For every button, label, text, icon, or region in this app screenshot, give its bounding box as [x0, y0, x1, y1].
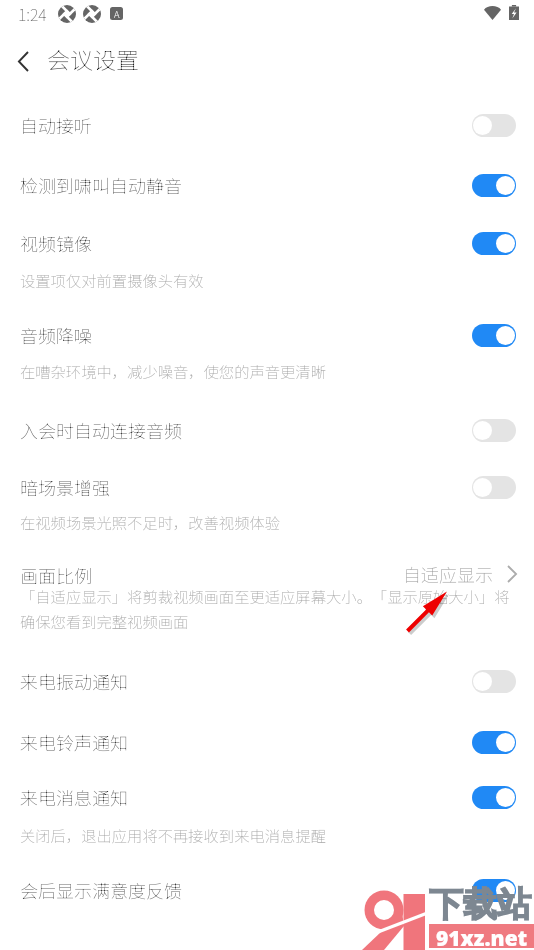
button[interactable]: [0, 548, 534, 652]
staticText: 在视频场景光照不足时，改善视频体验: [20, 511, 281, 533]
staticText: 会议设置: [47, 42, 139, 75]
staticText: 画面比例: [20, 562, 92, 588]
staticText: 来电铃声通知: [20, 729, 128, 755]
staticText: 检测到啸叫自动静音: [20, 172, 182, 198]
staticText: 自适应显示: [403, 561, 493, 587]
button[interactable]: [0, 712, 534, 770]
button[interactable]: Off: [472, 419, 516, 442]
staticText: 设置项仅对前置摄像头有效: [20, 269, 204, 291]
staticText: 来电消息通知: [20, 784, 128, 810]
staticText: 来电振动通知: [20, 668, 128, 694]
staticText: 1:24: [18, 2, 47, 25]
staticText: 会后显示满意度反馈: [20, 877, 182, 903]
staticText: 下载站: [429, 883, 531, 926]
button[interactable]: On: [472, 174, 516, 197]
button[interactable]: Off: [472, 476, 516, 499]
button[interactable]: [0, 770, 534, 862]
button[interactable]: [0, 96, 534, 156]
staticText: 音频降噪: [20, 322, 92, 348]
button[interactable]: Off: [472, 670, 516, 693]
button[interactable]: Back: [4, 42, 42, 80]
button[interactable]: On: [472, 731, 516, 754]
staticText: 入会时自动连接音频: [20, 417, 182, 443]
button[interactable]: [0, 156, 534, 214]
button[interactable]: [0, 652, 534, 712]
button[interactable]: [0, 458, 534, 548]
button[interactable]: Off: [472, 114, 516, 137]
staticText: 「自适应显示」将剪裁视频画面至更适应屏幕大小。「显示原始大小」将确保您看到完整视…: [20, 585, 522, 632]
button[interactable]: [0, 862, 534, 922]
staticText: 暗场景增强: [20, 474, 110, 500]
button[interactable]: On: [472, 879, 516, 902]
button[interactable]: On: [472, 324, 516, 347]
button[interactable]: On: [472, 786, 516, 809]
button[interactable]: [0, 306, 534, 400]
staticText: A: [114, 7, 120, 20]
staticText: 在嘈杂环境中，减少噪音，使您的声音更清晰: [20, 360, 326, 382]
staticText: 自动接听: [20, 112, 92, 138]
staticText: 视频镜像: [20, 230, 92, 256]
button[interactable]: On: [472, 232, 516, 255]
staticText: 关闭后，退出应用将不再接收到来电消息提醒: [20, 824, 326, 846]
button[interactable]: [0, 214, 534, 306]
staticText: 91xz.net: [436, 924, 528, 948]
button[interactable]: [0, 400, 534, 458]
